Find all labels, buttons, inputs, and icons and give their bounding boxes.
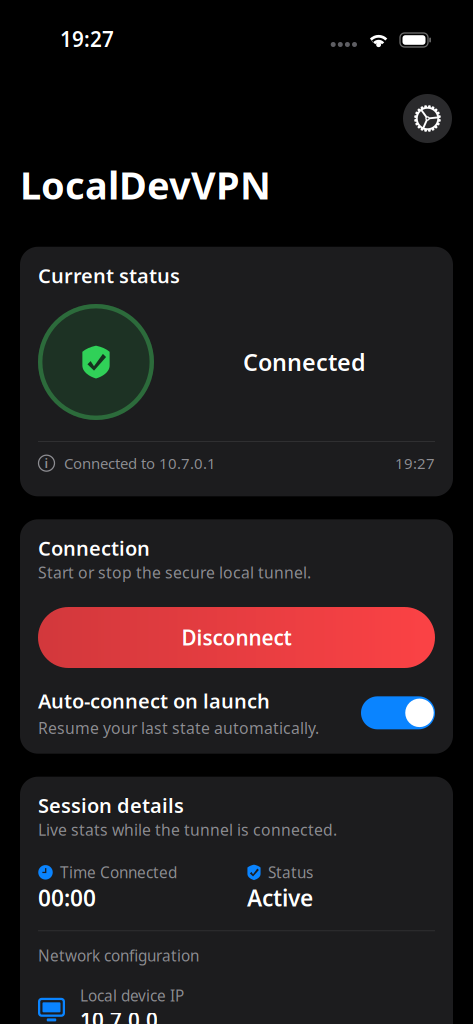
staticText: Active xyxy=(247,882,313,913)
staticText: Resume your last state automatically. xyxy=(38,717,319,739)
staticText: Status xyxy=(268,862,313,883)
staticText: Local device IP xyxy=(80,985,184,1006)
staticText: Connected xyxy=(243,346,366,378)
staticText: 00:00 xyxy=(38,882,96,913)
staticText: Time Connected xyxy=(60,862,177,883)
staticText: Network configuration xyxy=(38,945,199,966)
staticText: LocalDevVPN xyxy=(20,159,271,211)
staticText: 19:27 xyxy=(395,453,435,473)
staticText: 10.7.0.0 xyxy=(80,1006,158,1024)
button[interactable]: Auto-connect on launch xyxy=(361,696,435,729)
button[interactable]: Disconnect xyxy=(38,607,435,668)
staticText: Disconnect xyxy=(181,623,291,651)
staticText: Session details xyxy=(38,792,184,819)
staticText: Live stats while the tunnel is connected… xyxy=(38,819,337,840)
staticText: Connection xyxy=(38,534,150,561)
button[interactable]: Settings xyxy=(403,94,452,143)
staticText: Current status xyxy=(38,262,180,289)
staticText: i xyxy=(44,454,48,472)
staticText: 19:27 xyxy=(60,25,114,53)
staticText: Connected to 10.7.0.1 xyxy=(64,453,216,473)
staticText: Start or stop the secure local tunnel. xyxy=(38,562,311,583)
staticText: Auto-connect on launch xyxy=(38,687,270,714)
